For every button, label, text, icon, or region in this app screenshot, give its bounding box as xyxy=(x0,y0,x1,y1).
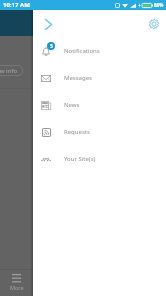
staticText: Messages xyxy=(64,74,92,82)
button[interactable]: More xyxy=(0,270,33,296)
button[interactable]: Your Site(s) xyxy=(33,145,166,172)
staticText: News xyxy=(64,101,80,109)
staticText: 10:17 AM xyxy=(3,1,30,9)
button[interactable]: View info xyxy=(0,65,23,76)
button[interactable]: Close navigation drawer xyxy=(40,16,56,32)
staticText: 88% xyxy=(154,2,164,8)
staticText: More xyxy=(10,284,24,291)
button[interactable]: Requests xyxy=(33,118,166,145)
button[interactable]: Settings xyxy=(146,16,162,32)
staticText: Requests xyxy=(64,128,90,136)
staticText: Your Site(s) xyxy=(64,155,96,163)
staticText: Notifications xyxy=(64,47,100,55)
button[interactable]: Messages xyxy=(33,64,166,91)
staticText: View info xyxy=(0,67,18,75)
button[interactable]: News xyxy=(33,91,166,118)
button[interactable]: 5 xyxy=(33,37,166,64)
staticText: 5 xyxy=(50,43,53,50)
